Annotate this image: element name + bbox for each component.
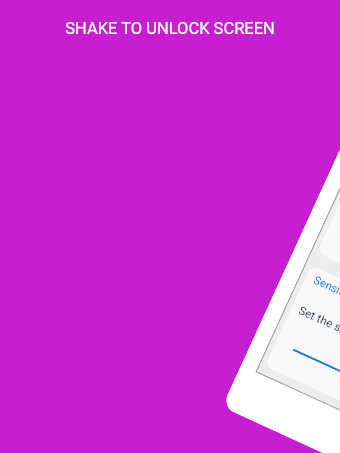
button[interactable]: Sensitivity bbox=[265, 265, 340, 453]
staticText: Set the shake sensitivity bbox=[296, 303, 340, 368]
button[interactable] bbox=[317, 158, 340, 358]
button[interactable]: Sensitivity bbox=[222, 127, 340, 453]
staticText: Sensitivity bbox=[312, 274, 340, 307]
staticText: SHAKE TO UNLOCK SCREEN bbox=[0, 19, 340, 38]
